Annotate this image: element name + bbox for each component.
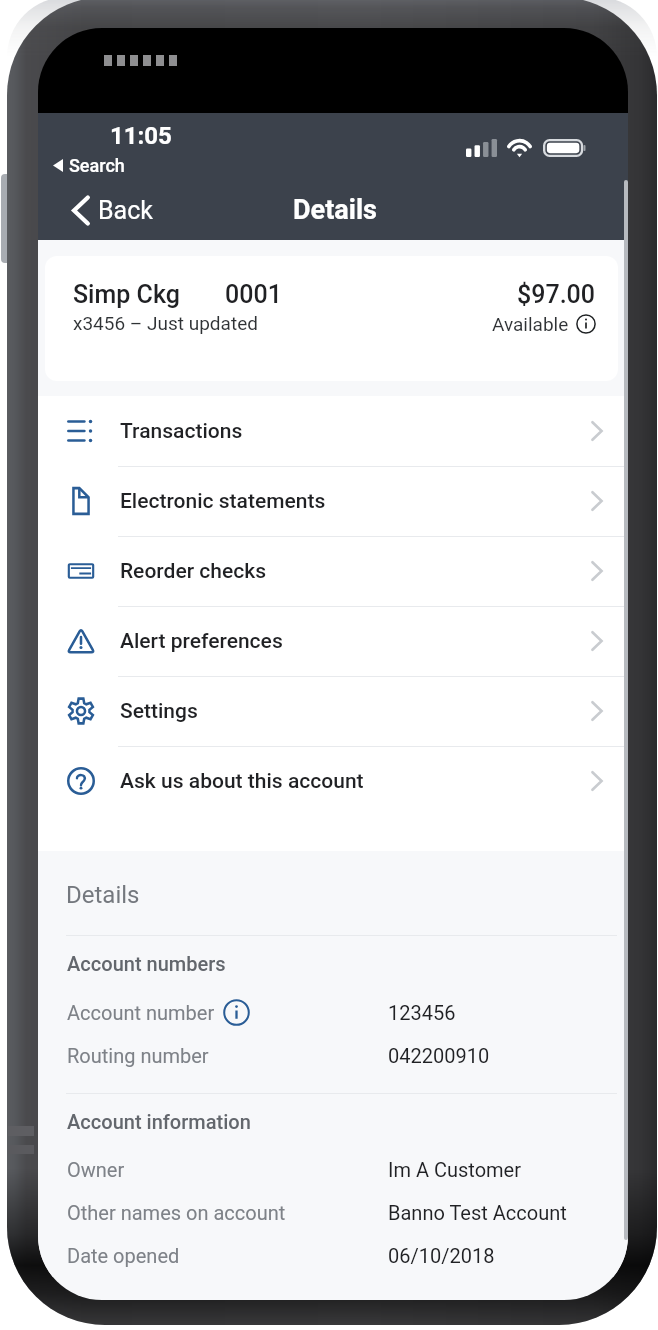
staticText: Date opened [67, 1244, 180, 1267]
staticText: Banno Test Account [388, 1201, 567, 1224]
staticText: Details [66, 881, 140, 909]
staticText: Account number [67, 1001, 215, 1024]
staticText: Electronic statements [120, 489, 326, 514]
staticText: Account numbers [67, 952, 226, 975]
staticText: Reorder checks [120, 559, 267, 584]
staticText: 06/10/2018 [388, 1244, 495, 1267]
staticText: Available [492, 313, 569, 335]
staticText: Routing number [67, 1044, 209, 1067]
button[interactable]: Simp Ckg [45, 256, 618, 381]
staticText: Transactions [120, 419, 243, 444]
staticText: Simp Ckg [73, 280, 180, 309]
button[interactable]: Transactions [38, 396, 628, 466]
button[interactable]: Reorder checks [38, 536, 628, 606]
staticText: Im A Customer [388, 1158, 521, 1181]
button[interactable]: Electronic statements [38, 466, 628, 536]
button[interactable]: Alert preferences [38, 606, 628, 676]
staticText: 042200910 [388, 1044, 490, 1067]
staticText: x3456 – Just updated [73, 312, 258, 334]
staticText: Details [293, 194, 377, 226]
staticText: Settings [120, 699, 198, 724]
staticText: Back [98, 196, 153, 225]
staticText: Other names on account [67, 1201, 286, 1224]
staticText: 11:05 [110, 122, 172, 150]
staticText: 0001 [225, 280, 282, 309]
staticText: Owner [67, 1158, 125, 1181]
staticText: Account information [67, 1110, 251, 1133]
button[interactable]: Settings [38, 676, 628, 746]
staticText: $97.00 [517, 280, 596, 309]
button[interactable]: Ask us about this account [38, 746, 628, 816]
staticText: Search [69, 155, 125, 176]
staticText: Ask us about this account [120, 769, 364, 794]
button[interactable]: Back [64, 190, 161, 231]
staticText: Alert preferences [120, 629, 283, 654]
staticText: 123456 [388, 1001, 456, 1024]
